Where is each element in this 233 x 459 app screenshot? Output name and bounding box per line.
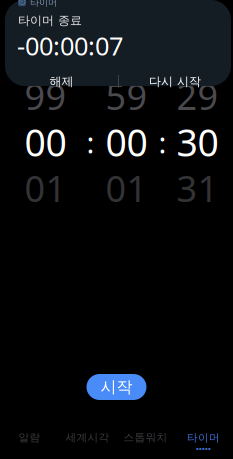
staticText: 타이머 bbox=[30, 0, 57, 8]
staticText: ⏲ bbox=[18, 0, 25, 7]
button[interactable]: 스톱워치 bbox=[116, 423, 174, 459]
staticText bbox=[159, 77, 166, 115]
button[interactable]: 해제 bbox=[5, 70, 118, 92]
staticText: : bbox=[158, 122, 166, 161]
staticText: 00 bbox=[105, 117, 147, 167]
button[interactable]: 타이머 bbox=[174, 423, 232, 459]
staticText: -00:00:07 bbox=[17, 29, 123, 62]
staticText: 다시 시작 bbox=[149, 74, 201, 89]
staticText: 스톱워치 bbox=[123, 431, 167, 444]
staticText: 시작 bbox=[100, 377, 132, 397]
staticText: 31 bbox=[176, 164, 218, 212]
staticText: 99 bbox=[24, 72, 66, 120]
staticText: 알람 bbox=[18, 431, 40, 444]
staticText: 해제 bbox=[49, 74, 73, 89]
staticText: 00 bbox=[24, 117, 66, 167]
staticText: 타이머 종료 bbox=[18, 13, 82, 28]
staticText: 타이머 bbox=[187, 431, 220, 444]
staticText: 01 bbox=[105, 164, 147, 212]
button[interactable]: 다시 시작 bbox=[119, 70, 231, 92]
staticText bbox=[87, 77, 94, 115]
staticText: 59 bbox=[105, 72, 147, 120]
button[interactable]: 시작 bbox=[86, 374, 146, 400]
staticText: 01 bbox=[24, 164, 66, 212]
staticText: : bbox=[86, 122, 94, 161]
button[interactable]: 알람 bbox=[0, 423, 58, 459]
button[interactable]: 세계시각 bbox=[58, 423, 116, 459]
staticText: 세계시각 bbox=[65, 431, 109, 444]
staticText: 29 bbox=[176, 72, 218, 120]
staticText: ▪▪▪▪▪ bbox=[196, 446, 211, 451]
staticText: 30 bbox=[176, 117, 218, 167]
